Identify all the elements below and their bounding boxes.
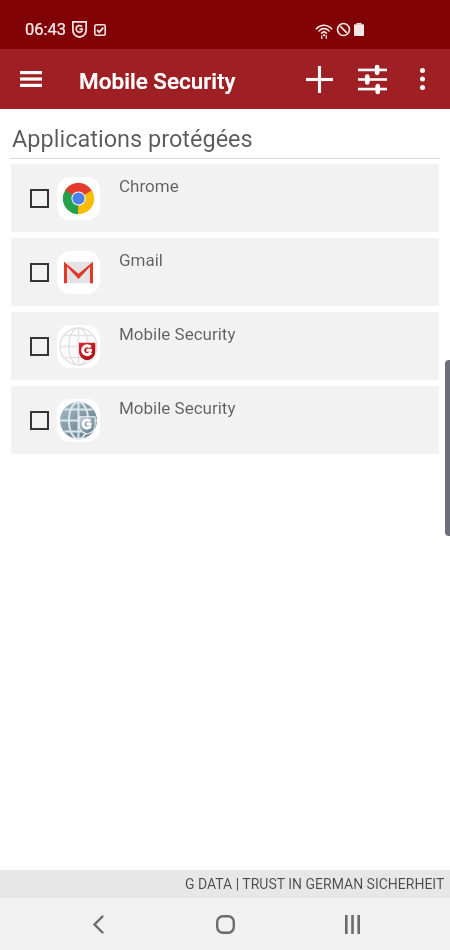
button[interactable]: Home: [197, 898, 253, 950]
staticText: Chrome: [119, 176, 179, 196]
staticText: Gmail: [119, 250, 164, 270]
staticText: Applications protégées: [12, 125, 253, 153]
button[interactable]: Mobile Security: [11, 386, 439, 454]
button[interactable]: Recent apps: [324, 898, 380, 950]
button[interactable]: Add application: [295, 55, 343, 103]
button[interactable]: Gmail: [11, 238, 439, 306]
staticText: G DATA | TRUST IN GERMAN SICHERHEIT: [185, 876, 445, 892]
staticText: Mobile Security: [119, 324, 236, 344]
button[interactable]: Mobile Security: [11, 312, 439, 380]
button[interactable]: More options: [400, 57, 444, 101]
staticText: Mobile Security: [119, 398, 236, 418]
staticText: 06:43: [25, 20, 67, 39]
button[interactable]: Back: [70, 898, 126, 950]
staticText: Mobile Security: [79, 68, 236, 94]
button[interactable]: Chrome: [11, 164, 439, 232]
button[interactable]: Filter settings: [348, 55, 396, 103]
button[interactable]: Open navigation menu: [9, 57, 53, 101]
